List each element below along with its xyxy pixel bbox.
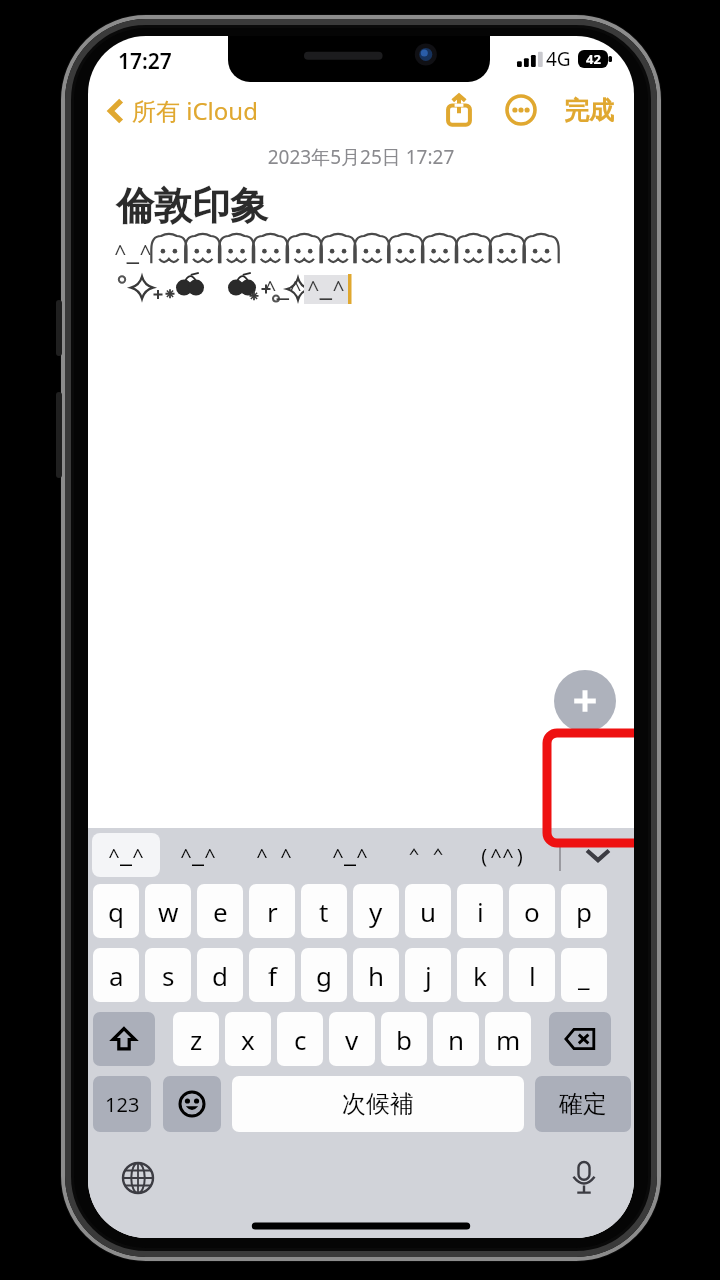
staticText: b: [396, 1022, 412, 1057]
button[interactable]: 次候補: [232, 1076, 524, 1132]
button[interactable]: n: [433, 1012, 479, 1066]
staticText: w: [158, 894, 179, 929]
staticText: v: [345, 1022, 359, 1057]
button[interactable]: ⌃ ⌃: [388, 833, 464, 877]
button[interactable]: Add attachment: [554, 670, 616, 732]
button[interactable]: r: [249, 884, 295, 938]
staticText: r: [267, 894, 278, 929]
staticText: d: [212, 958, 228, 993]
staticText: x: [241, 1022, 255, 1057]
button[interactable]: d: [197, 948, 243, 1002]
staticText: 123: [105, 1091, 140, 1118]
button[interactable]: v: [329, 1012, 375, 1066]
staticText: c: [294, 1022, 307, 1057]
staticText: i: [477, 894, 484, 929]
button[interactable]: Backspace: [549, 1012, 611, 1066]
button[interactable]: h: [353, 948, 399, 1002]
button[interactable]: _: [561, 948, 607, 1002]
staticText: t: [319, 894, 329, 929]
button[interactable]: a: [93, 948, 139, 1002]
button[interactable]: Hide keyboard: [576, 833, 620, 877]
staticText: _: [578, 958, 590, 993]
staticText: y: [369, 894, 383, 929]
staticText: 2023年5月25日 17:27: [88, 144, 634, 170]
button[interactable]: t: [301, 884, 347, 938]
button[interactable]: w: [145, 884, 191, 938]
staticText: 42: [586, 50, 601, 68]
button[interactable]: g: [301, 948, 347, 1002]
button[interactable]: Share: [436, 87, 482, 133]
staticText: ^_^: [264, 275, 302, 304]
button[interactable]: x: [225, 1012, 271, 1066]
staticText: 17:27: [118, 47, 172, 76]
button[interactable]: ^ ^: [236, 833, 312, 877]
button[interactable]: p: [561, 884, 607, 938]
staticText: g: [316, 958, 332, 993]
staticText: ^_^: [114, 239, 152, 268]
staticText: 倫敦印象: [116, 182, 268, 230]
button[interactable]: e: [197, 884, 243, 938]
staticText: k: [473, 958, 487, 993]
button[interactable]: 完成: [558, 89, 620, 132]
staticText: ⌃ ⌃: [408, 842, 445, 869]
button[interactable]: Shift: [93, 1012, 155, 1066]
staticText: l: [529, 958, 536, 993]
button[interactable]: b: [381, 1012, 427, 1066]
staticText: z: [190, 1022, 203, 1057]
button[interactable]: ^_^: [160, 833, 236, 877]
button[interactable]: 123: [93, 1076, 151, 1132]
button[interactable]: s: [145, 948, 191, 1002]
staticText: a: [109, 958, 124, 993]
staticText: (^^): [478, 842, 526, 869]
staticText: e: [213, 894, 228, 929]
button[interactable]: ^_^: [92, 833, 160, 877]
staticText: 4G: [546, 46, 571, 72]
button[interactable]: 確定: [535, 1076, 631, 1132]
button[interactable]: u: [405, 884, 451, 938]
staticText: o: [524, 894, 540, 929]
button[interactable]: z: [173, 1012, 219, 1066]
button[interactable]: Emoji: [163, 1076, 221, 1132]
button[interactable]: (^^): [464, 833, 540, 877]
button[interactable]: Dictation: [560, 1154, 608, 1202]
button[interactable]: o: [509, 884, 555, 938]
button[interactable]: l: [509, 948, 555, 1002]
button[interactable]: i: [457, 884, 503, 938]
staticText: 所有 iCloud: [132, 94, 258, 127]
staticText: h: [368, 958, 385, 993]
button[interactable]: k: [457, 948, 503, 1002]
staticText: ^_^: [307, 275, 345, 304]
staticText: 確定: [559, 1089, 607, 1119]
button[interactable]: c: [277, 1012, 323, 1066]
button[interactable]: 所有 iCloud: [102, 90, 264, 131]
button[interactable]: q: [93, 884, 139, 938]
button[interactable]: m: [485, 1012, 531, 1066]
button[interactable]: j: [405, 948, 451, 1002]
staticText: 次候補: [342, 1089, 414, 1119]
staticText: s: [162, 958, 175, 993]
button[interactable]: f: [249, 948, 295, 1002]
staticText: f: [268, 958, 277, 993]
button[interactable]: More options: [498, 87, 544, 133]
staticText: n: [448, 1022, 465, 1057]
button[interactable]: ^_^: [312, 833, 388, 877]
staticText: p: [576, 894, 592, 929]
staticText: ^_^: [108, 842, 144, 869]
staticText: 完成: [564, 95, 614, 126]
button[interactable]: Switch keyboard language: [114, 1154, 162, 1202]
staticText: ^ ^: [256, 842, 292, 869]
staticText: m: [496, 1022, 521, 1057]
staticText: ^_^: [332, 842, 368, 869]
staticText: j: [425, 958, 432, 993]
staticText: ^_^: [180, 842, 216, 869]
staticText: q: [108, 894, 124, 929]
button[interactable]: y: [353, 884, 399, 938]
staticText: u: [420, 894, 437, 929]
